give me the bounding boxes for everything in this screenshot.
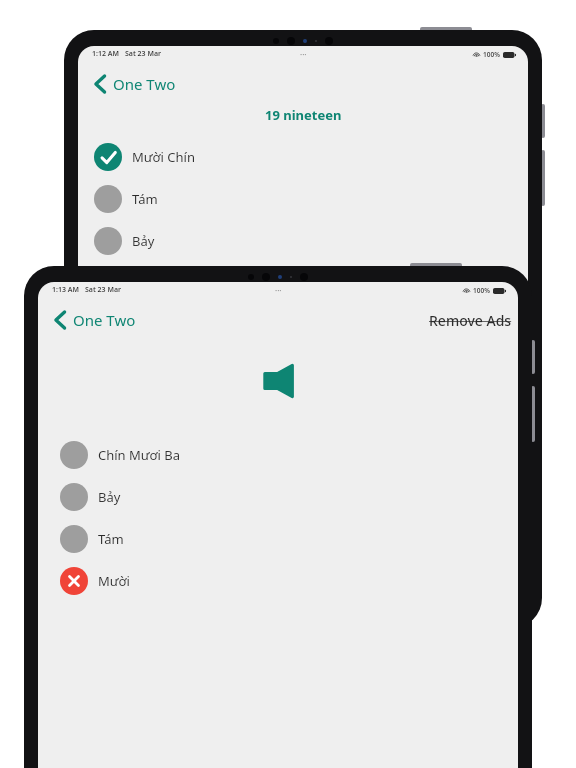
staticText: Tám — [98, 530, 124, 548]
staticText: Mười Chín — [132, 148, 195, 166]
button[interactable]: Mười — [38, 560, 518, 602]
staticText: 1:12 AM — [92, 49, 119, 59]
button[interactable]: Bảy — [38, 476, 518, 518]
staticText: 100% — [473, 286, 490, 295]
button[interactable]: Mười Chín — [78, 136, 528, 178]
staticText: ··· — [300, 49, 307, 60]
staticText: Sat 23 Mar — [85, 285, 122, 295]
staticText: Chín Mươi Ba — [98, 446, 181, 464]
button[interactable]: Sáu — [78, 262, 528, 304]
staticText: Sáu — [132, 274, 155, 292]
button[interactable]: Remove Ads — [423, 307, 518, 334]
button[interactable]: One Two — [48, 306, 142, 334]
button[interactable]: One Two — [88, 70, 182, 98]
staticText: Remove Ads — [429, 311, 512, 330]
staticText: 100% — [483, 50, 500, 59]
staticText: One Two — [73, 310, 136, 330]
staticText: Bảy — [132, 232, 155, 250]
staticText: ··· — [275, 285, 282, 296]
staticText: 1:13 AM — [52, 285, 79, 295]
button[interactable]: Tám — [78, 178, 528, 220]
button[interactable]: Bảy — [78, 220, 528, 262]
staticText: Tám — [132, 190, 158, 208]
button[interactable]: Chín Mươi Ba — [38, 434, 518, 476]
staticText: Mười — [98, 572, 130, 590]
button[interactable]: Tám — [38, 518, 518, 560]
staticText: 19 nineteen — [265, 106, 342, 124]
button[interactable]: Play sound — [251, 354, 305, 408]
staticText: One Two — [113, 74, 176, 94]
staticText: Sat 23 Mar — [125, 49, 162, 59]
staticText: Bảy — [98, 488, 121, 506]
